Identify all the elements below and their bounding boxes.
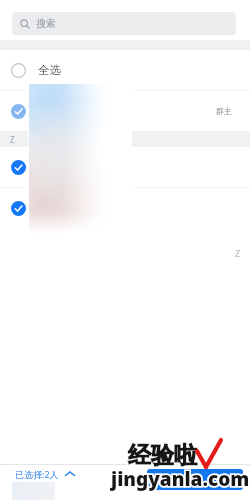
staticText: 全选 <box>38 63 61 77</box>
button[interactable]: 全选 <box>0 50 250 90</box>
button[interactable]: Z <box>230 245 246 261</box>
button[interactable]: Contact, selected <box>0 91 250 131</box>
button[interactable]: Contact, selected <box>0 188 250 228</box>
staticText: Z <box>10 134 15 145</box>
staticText: 群主 <box>216 106 232 116</box>
button[interactable]: 搜索 <box>12 12 236 35</box>
staticText: Z <box>235 247 241 259</box>
staticText: 已选择:2人 <box>15 468 59 480</box>
button[interactable]: 已选择:2人 <box>0 465 250 482</box>
staticText: 搜索 <box>36 17 56 30</box>
button[interactable]: Contact, selected <box>0 147 250 187</box>
button[interactable]: Expand selected list <box>64 468 76 480</box>
